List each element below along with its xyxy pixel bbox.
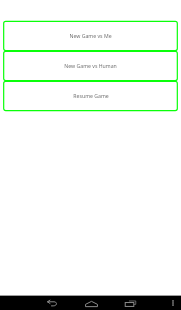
button[interactable]: More options [168,296,178,310]
button[interactable]: Recent apps [120,296,140,310]
staticText: New Game vs Human [64,62,117,69]
button[interactable]: Home [81,298,101,310]
staticText: Resume Game [73,92,109,99]
staticText: New Game vs Me [69,32,112,39]
button[interactable]: New Game vs Human [3,51,178,81]
button[interactable]: Back [42,296,62,310]
button[interactable]: Resume Game [3,81,178,111]
button[interactable]: New Game vs Me [3,21,178,51]
